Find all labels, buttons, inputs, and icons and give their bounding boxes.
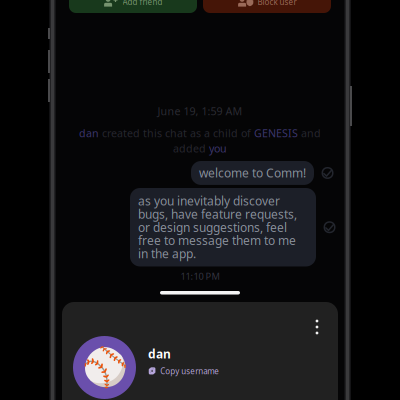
staticText: June 19, 1:59 AM: [157, 104, 242, 118]
staticText: dan: [79, 126, 99, 140]
button[interactable]: Block user: [203, 0, 331, 13]
staticText: GENESIS: [254, 126, 298, 140]
staticText: you: [209, 141, 227, 155]
staticText: as you inevitably discover bugs, have fe…: [138, 193, 297, 261]
button[interactable]: More options: [306, 316, 328, 338]
staticText: Copy username: [160, 366, 219, 376]
staticText: Block user: [257, 0, 296, 7]
staticText: created this chat as a child of: [99, 126, 254, 140]
button[interactable]: Copy username: [148, 366, 219, 376]
staticText: added: [173, 141, 209, 155]
staticText: ⚾: [81, 346, 127, 389]
staticText: 11:10 PM: [180, 270, 219, 282]
staticText: and: [298, 126, 321, 140]
staticText: welcome to Comm!: [199, 165, 306, 181]
staticText: dan: [148, 346, 171, 362]
button[interactable]: Add friend: [69, 0, 197, 13]
staticText: Add friend: [122, 0, 162, 7]
